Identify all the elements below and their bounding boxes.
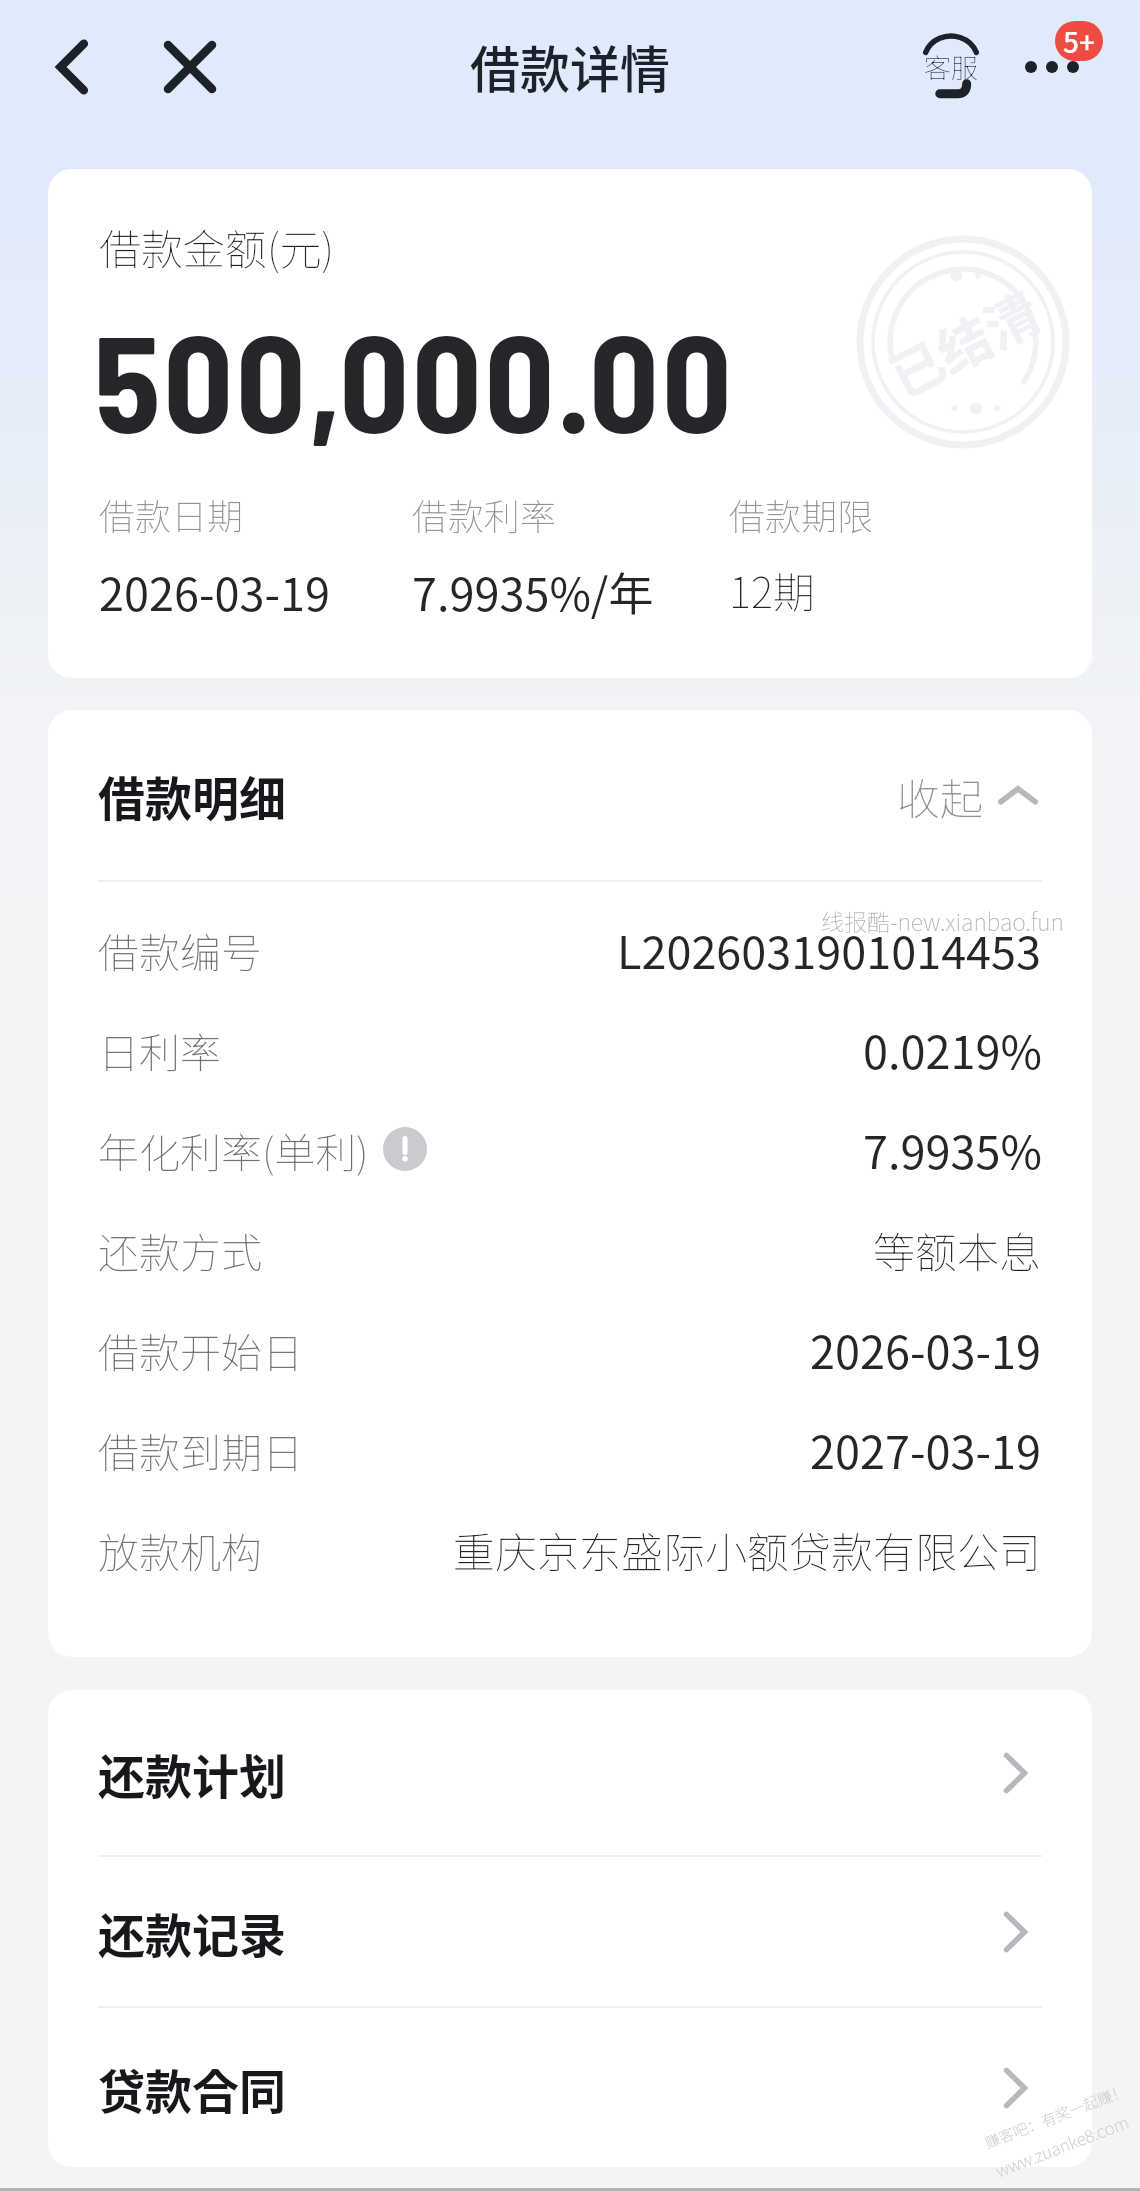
staticText: 等额本息 [873, 1219, 1042, 1280]
staticText: L2026031901014453 [617, 917, 1042, 982]
staticText: 7.9935% [863, 1117, 1042, 1182]
staticText: 还款方式 [98, 1220, 262, 1279]
staticText: 还款记录 [98, 1898, 286, 1966]
staticText: 放款机构 [98, 1520, 262, 1579]
button[interactable]: 还款记录 [48, 1857, 1092, 2006]
staticText: 借款编号 [98, 920, 262, 979]
staticText: 借款期限 [729, 488, 874, 540]
staticText: 5+ [1063, 21, 1095, 61]
staticText: 2026-03-19 [810, 1317, 1042, 1382]
staticText: 500,000.00 [94, 297, 735, 460]
staticText: 12期 [729, 559, 815, 620]
staticText: 借款日期 [99, 488, 244, 540]
staticText: 线报酷-new.xianbao.fun [821, 904, 1064, 937]
button[interactable]: 客服 [896, 12, 1006, 122]
staticText: 已结清 [875, 272, 1052, 413]
staticText: 重庆京东盛际小额贷款有限公司 [453, 1519, 1042, 1580]
button[interactable]: 贷款合同 [48, 2008, 1092, 2167]
staticText: 借款利率 [412, 488, 557, 540]
button[interactable]: 借款明细 [48, 710, 1092, 880]
staticText: 年化利率(单利) [98, 1120, 369, 1179]
staticText: www.zuanke8.com [992, 2108, 1132, 2182]
button[interactable]: Back [20, 14, 126, 120]
staticText: 收起 [897, 765, 983, 827]
staticText: 借款金额(元) [99, 216, 335, 277]
staticText: 7.9935%/年 [412, 559, 654, 624]
staticText: 借款开始日 [98, 1320, 303, 1379]
button[interactable]: Close [137, 14, 243, 120]
staticText: 借款明细 [98, 761, 286, 829]
staticText: 客服 [924, 47, 978, 86]
staticText: 借款详情 [470, 30, 670, 102]
staticText: 日利率 [98, 1020, 221, 1079]
staticText: 2026-03-19 [99, 559, 331, 624]
button[interactable]: More options [997, 12, 1107, 122]
button[interactable]: 还款计划 [48, 1690, 1092, 1855]
staticText: 贷款合同 [98, 2054, 286, 2122]
staticText: 赚客吧：有奖一起赚！ [981, 2079, 1130, 2153]
staticText: 借款到期日 [98, 1420, 303, 1479]
staticText: 2027-03-19 [810, 1417, 1042, 1482]
staticText: 0.0219% [863, 1017, 1042, 1082]
staticText: 还款计划 [98, 1739, 286, 1807]
